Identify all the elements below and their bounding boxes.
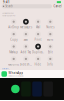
staticText: Favourite bbox=[8, 63, 20, 66]
staticText: Yesterday, 9:41 PM bbox=[2, 15, 15, 17]
button[interactable]: Messages bbox=[20, 18, 32, 30]
staticText: AirDrop bbox=[8, 25, 19, 29]
button[interactable]: Cancel bbox=[53, 4, 62, 8]
staticText: WhatsApp bbox=[8, 71, 23, 75]
staticText: Search bbox=[5, 4, 13, 8]
button[interactable]: Print bbox=[32, 30, 44, 42]
button[interactable]: Copy bbox=[8, 30, 20, 42]
staticText: Mail bbox=[36, 25, 41, 29]
staticText: Last Wednesday bbox=[2, 12, 14, 14]
staticText: More bbox=[47, 38, 54, 41]
button[interactable]: Markup bbox=[8, 42, 20, 55]
button[interactable]: Favourite bbox=[8, 55, 20, 67]
staticText: Edit bbox=[48, 50, 53, 54]
button[interactable]: Duplicate bbox=[32, 42, 44, 55]
staticText: Markup bbox=[9, 50, 18, 54]
button[interactable]: Hide bbox=[32, 55, 44, 67]
button[interactable]: Add Tag bbox=[20, 42, 32, 55]
staticText: Simple. Secure. Reliable. bbox=[8, 75, 23, 77]
staticText: Cancel bbox=[53, 4, 62, 8]
staticText: Copy bbox=[10, 38, 17, 41]
staticText: Add Tag bbox=[20, 50, 31, 54]
button[interactable]: Edit Actions… bbox=[2, 68, 10, 69]
button[interactable]: Slideshow bbox=[20, 55, 32, 67]
staticText: Hide bbox=[35, 63, 42, 66]
button[interactable]: AirDrop bbox=[8, 18, 20, 30]
staticText: 9:41 bbox=[3, 0, 10, 4]
button[interactable]: Save bbox=[20, 30, 32, 42]
button[interactable]: Info bbox=[44, 55, 56, 67]
button[interactable]: More bbox=[44, 30, 56, 42]
staticText: Info bbox=[47, 63, 53, 66]
staticText: Notes bbox=[46, 25, 54, 29]
staticText: Slideshow bbox=[20, 63, 32, 66]
staticText: Messages bbox=[20, 25, 32, 29]
staticText: Save bbox=[23, 38, 28, 41]
staticText: Duplicate bbox=[32, 50, 44, 54]
button[interactable]: Edit bbox=[44, 42, 56, 55]
button[interactable]: WhatsApp bbox=[0, 70, 64, 78]
staticText: Edit Actions… bbox=[2, 68, 10, 69]
button[interactable]: Notes bbox=[44, 18, 56, 30]
button[interactable]: Search bbox=[2, 4, 52, 8]
staticText: Print bbox=[35, 38, 42, 41]
button[interactable]: Mail bbox=[32, 18, 44, 30]
